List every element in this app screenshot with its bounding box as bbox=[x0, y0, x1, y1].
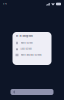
button[interactable]: Lock screen bbox=[12, 46, 51, 52]
button[interactable]: Back bbox=[10, 90, 17, 94]
staticText: Lock screen bbox=[20, 48, 31, 50]
staticText: 9:41 bbox=[3, 3, 7, 5]
button[interactable]: Home and lock screens bbox=[12, 52, 51, 58]
staticText: Home screen bbox=[20, 42, 32, 44]
staticText: Home and lock screens bbox=[20, 54, 41, 56]
button[interactable]: Home screen bbox=[12, 40, 51, 46]
staticText: Set as background bbox=[15, 35, 32, 37]
